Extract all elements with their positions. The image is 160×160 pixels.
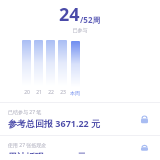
button[interactable]: 查看参考总回报详情 — [137, 112, 152, 127]
staticText: 已结参与 27 笔 — [8, 109, 42, 116]
button[interactable]: 已结参与 27 笔 — [0, 103, 160, 135]
staticText: 累计抵现 156.25 元 — [8, 150, 86, 154]
staticText: /52周 — [80, 14, 101, 25]
staticText: 20 — [24, 89, 30, 96]
staticText: 24 — [59, 2, 80, 27]
staticText: 本周 — [70, 90, 80, 96]
staticText: 参考总回报 3671.22 元 — [8, 117, 101, 129]
button[interactable]: 查看累计抵现详情 — [137, 142, 152, 154]
staticText: 使用 27 张抵现金 — [8, 142, 47, 149]
staticText: 23 — [60, 89, 66, 96]
staticText: 已参与 — [0, 27, 160, 33]
staticText: 21 — [36, 89, 42, 96]
button[interactable]: 使用 27 张抵现金 — [0, 136, 160, 160]
staticText: 22 — [48, 89, 54, 96]
